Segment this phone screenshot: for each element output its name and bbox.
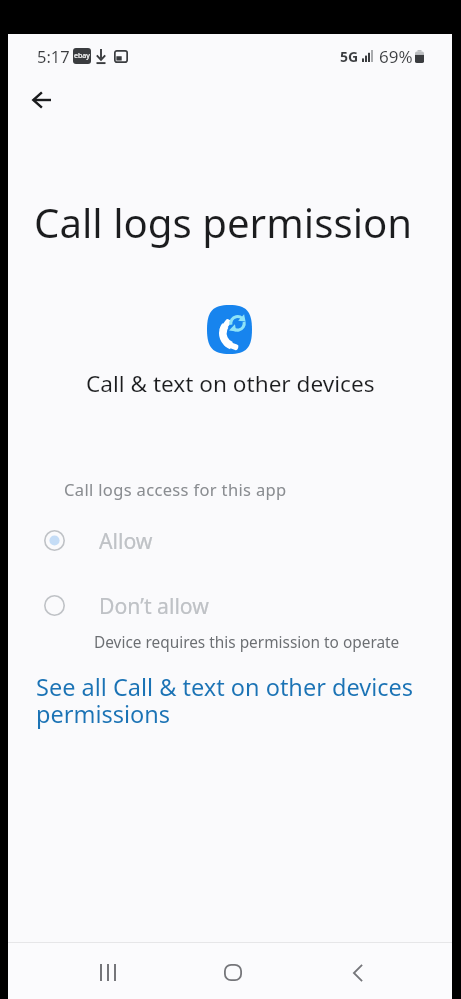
staticText: Allow (99, 526, 153, 555)
staticText: 5:17 (37, 45, 70, 67)
staticText: Call logs permission (34, 195, 413, 250)
staticText: Device requires this permission to opera… (94, 632, 400, 653)
button[interactable]: Navigate up (13, 72, 69, 128)
button[interactable]: See all Call & text on other devices per… (36, 671, 428, 730)
staticText: 5G (340, 47, 359, 66)
button[interactable]: Allow (8, 516, 452, 564)
staticText: Call & text on other devices (86, 368, 375, 399)
button[interactable]: Back (322, 946, 394, 999)
staticText: Call logs access for this app (64, 478, 287, 500)
button[interactable]: Home (197, 946, 269, 999)
button[interactable]: Recent apps (72, 946, 144, 999)
button[interactable]: Don’t allow (8, 581, 452, 629)
staticText: ebay (74, 51, 90, 61)
staticText: 69% (379, 45, 413, 68)
staticText: Don’t allow (99, 591, 209, 620)
staticText: See all Call & text on other devices per… (36, 671, 428, 730)
